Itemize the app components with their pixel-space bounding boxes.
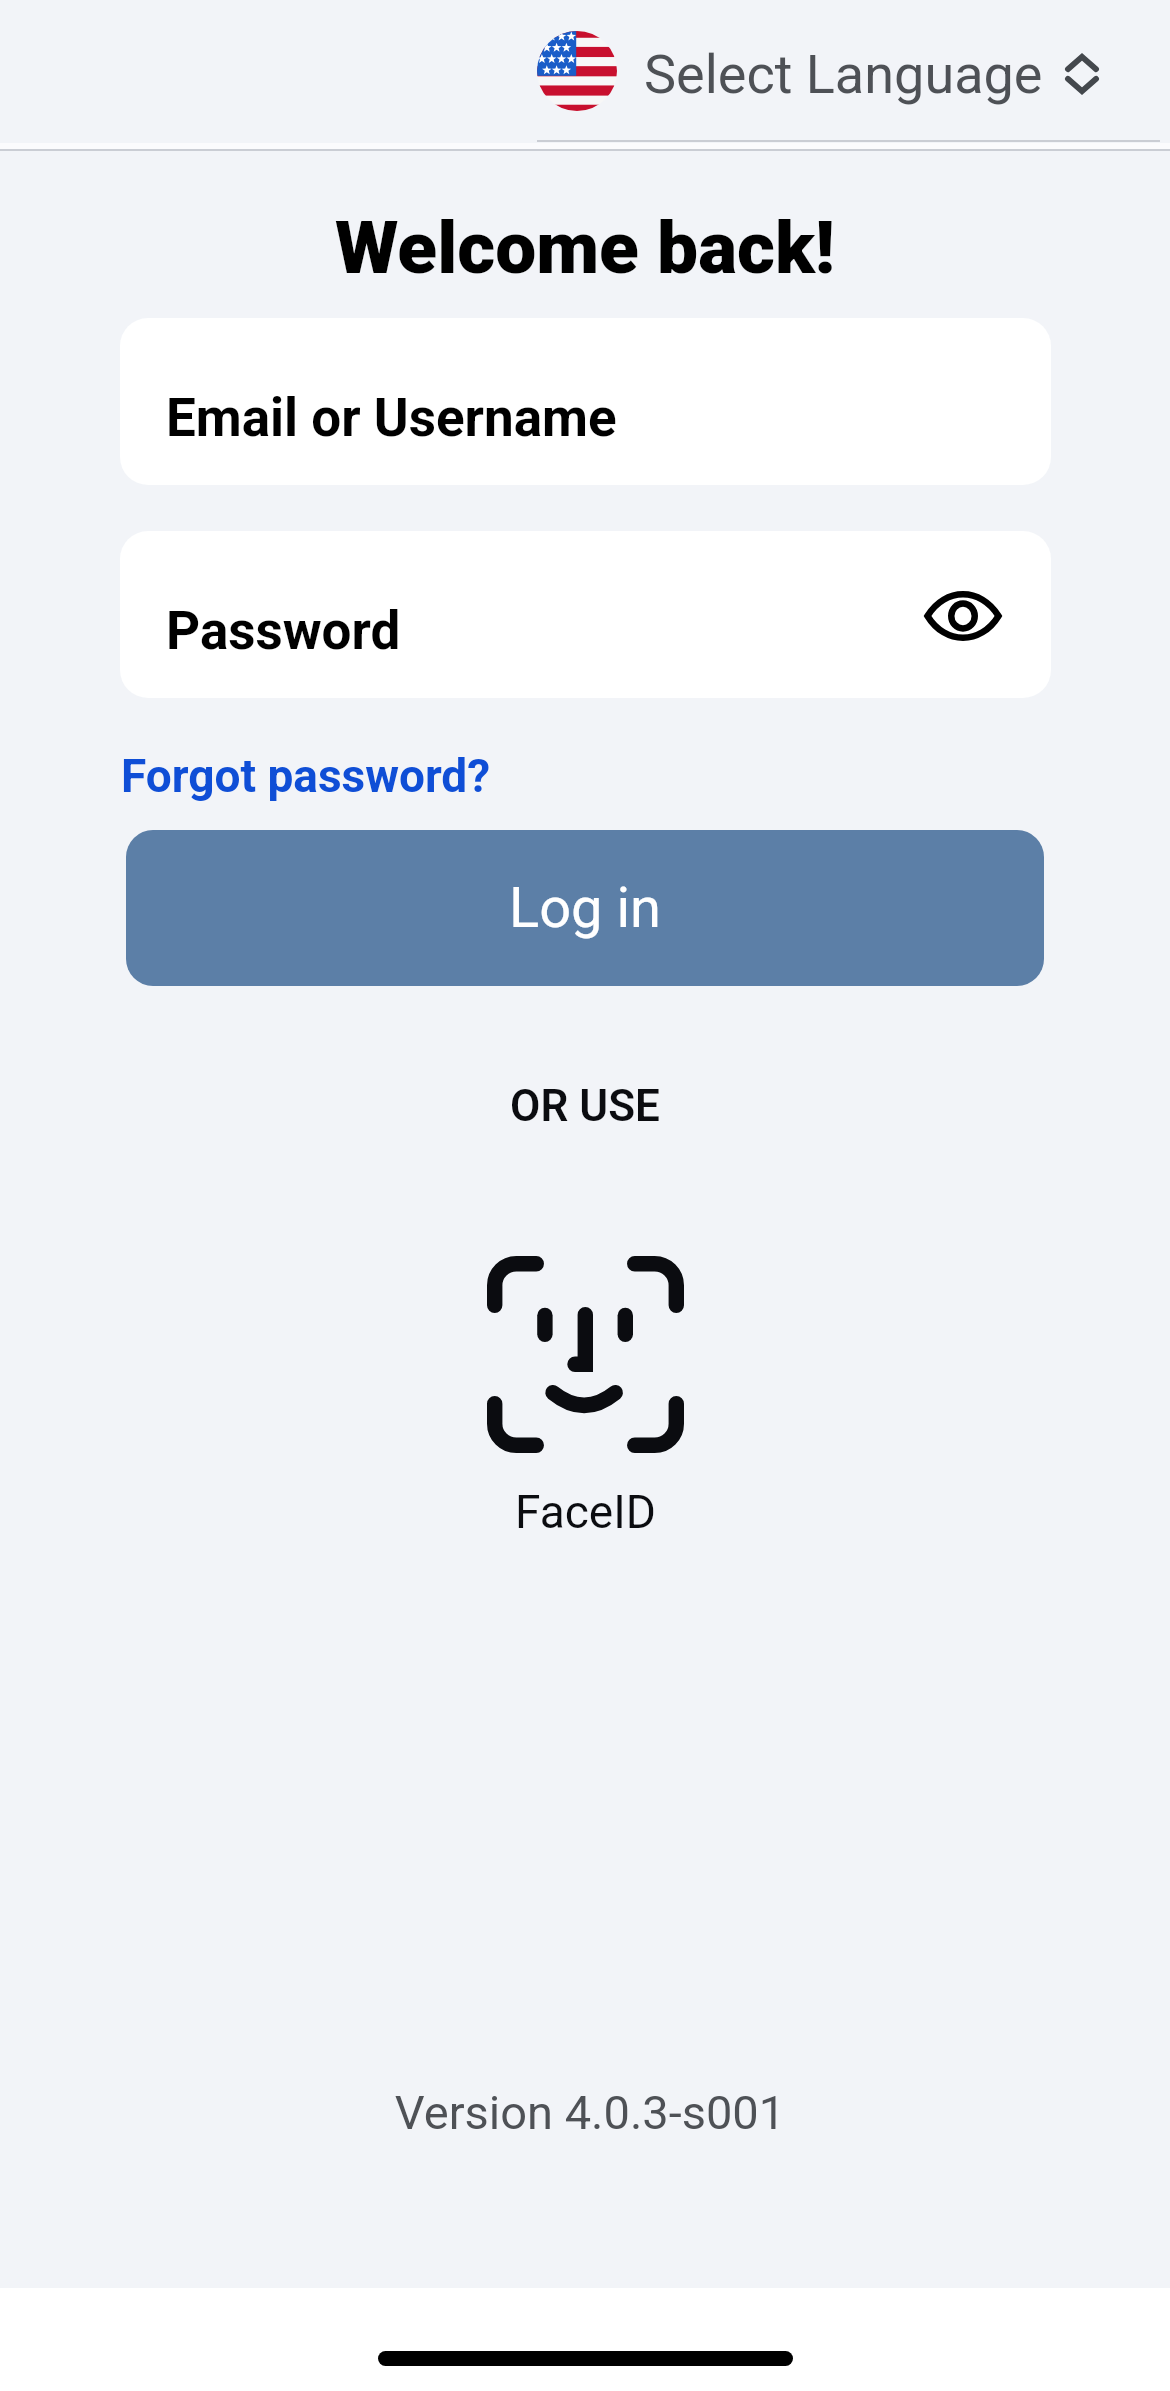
staticText: FaceID [515,1485,656,1539]
button[interactable]: Email or Username [120,318,1051,485]
staticText: Password [166,600,401,662]
other: Select language [1055,47,1109,101]
staticText: Email or Username [166,387,617,449]
staticText: Welcome back! [0,205,1170,291]
button[interactable]: Forgot password? [121,749,491,803]
staticText: OR USE [0,1080,1170,1132]
button[interactable]: Password [120,531,1051,698]
other: FaceID [487,1256,684,1453]
button[interactable]: Select Language [534,30,1108,118]
button[interactable]: Show password [918,571,1008,661]
button[interactable]: FaceID [487,1256,684,1539]
staticText: Select Language [644,43,1043,106]
button[interactable]: Log in [126,830,1044,986]
staticText: Version 4.0.3-s001 [5,2085,1170,2140]
staticText: Log in [509,875,661,941]
